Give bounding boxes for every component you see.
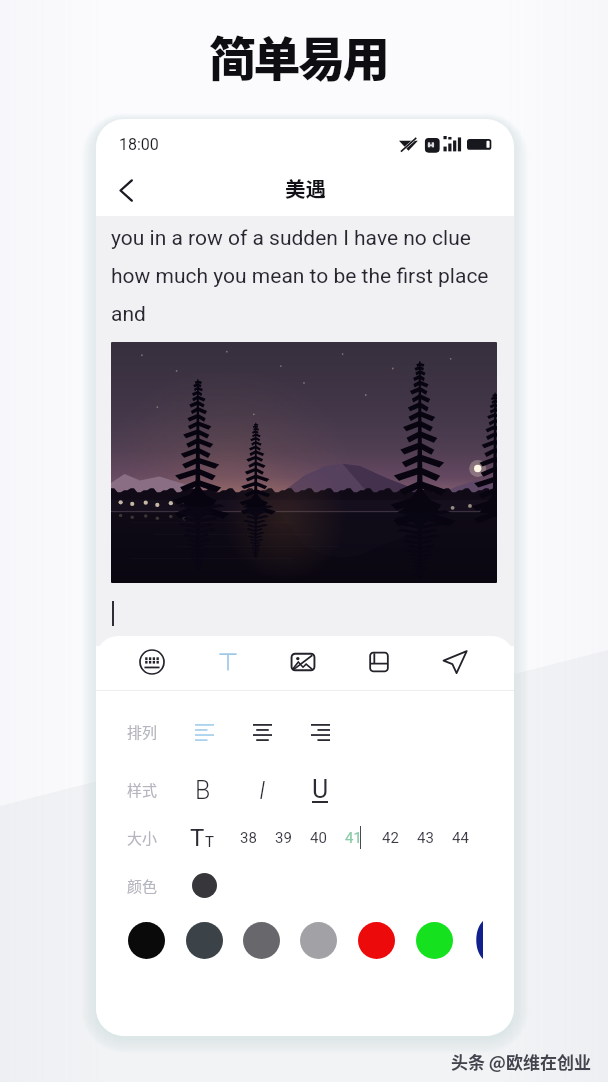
staticText: 40 [310,829,327,847]
button[interactable]: 42 [364,820,416,856]
staticText: 43 [417,829,434,847]
button[interactable]: Inserted photo [111,342,497,583]
staticText: 大小 [127,827,158,849]
button[interactable]: Font size [176,820,228,856]
button[interactable]: 38 [222,820,274,856]
button[interactable]: Align left [184,712,224,752]
button[interactable]: I [236,772,288,808]
button[interactable]: 43 [399,820,451,856]
staticText: B [195,776,211,805]
button[interactable]: Align right [300,712,340,752]
button[interactable]: Insert image [280,639,326,685]
staticText: 18:00 [119,135,159,154]
staticText: I [259,776,266,805]
staticText: you in a row of a sudden I have no clue … [111,226,501,326]
staticText: 样式 [127,779,158,801]
staticText: 美遇 [285,173,326,203]
button[interactable]: Align centre [242,712,282,752]
button[interactable]: Template [356,639,402,685]
button[interactable]: Red colour [358,922,395,959]
button[interactable]: Current colour [192,873,217,898]
button[interactable]: 40 [292,820,344,856]
button[interactable]: Back [104,168,148,212]
button[interactable]: Keyboard [129,639,175,685]
staticText: U [312,775,329,804]
staticText: 颜色 [127,875,158,897]
button[interactable]: Underline [294,772,346,808]
button[interactable]: 44 [434,820,486,856]
staticText: T [190,824,205,852]
button[interactable]: Text style [205,639,251,685]
button[interactable]: Dark slate colour [186,922,223,959]
button[interactable]: Send [432,639,478,685]
staticText: T [205,833,214,851]
staticText: 41 [345,829,362,847]
staticText: 头条 @欧维在创业 [451,1049,591,1074]
button[interactable]: 39 [257,820,309,856]
staticText: 38 [240,829,257,847]
button[interactable]: Black colour [128,922,165,959]
button[interactable]: B [177,772,229,808]
staticText: 39 [275,829,292,847]
button[interactable]: 41 [327,820,379,856]
button[interactable]: you in a row of a sudden I have no clue … [111,226,501,326]
staticText: 42 [382,829,399,847]
button[interactable]: Green colour [416,922,453,959]
staticText: 排列 [127,721,158,743]
staticText: 简单易用 [209,21,388,89]
button[interactable]: Grey colour [243,922,280,959]
button[interactable]: Light grey colour [300,922,337,959]
button[interactable]: Blue colour swatch [473,921,483,959]
staticText: 44 [452,829,469,847]
